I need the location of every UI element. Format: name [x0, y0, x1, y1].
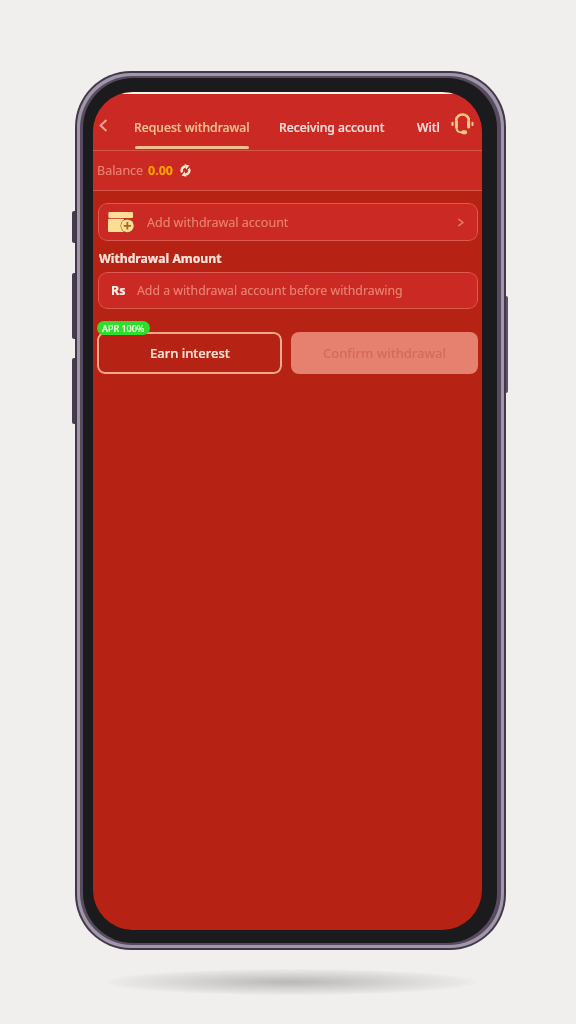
button[interactable]: Withdrawal record	[417, 94, 439, 150]
staticText: APR 100%	[102, 322, 145, 334]
button[interactable]: Add withdrawal account	[98, 203, 478, 241]
button[interactable]: Back	[93, 112, 114, 138]
staticText: Balance	[97, 162, 144, 179]
staticText: Request withdrawal	[134, 119, 250, 136]
staticText: Confirm withdrawal	[323, 344, 446, 362]
button[interactable]: Receiving account	[273, 94, 390, 150]
staticText: Receiving account	[279, 119, 385, 136]
button[interactable]: Confirm withdrawal	[291, 332, 478, 374]
button[interactable]: Refresh balance	[177, 162, 194, 179]
staticText: Add withdrawal account	[147, 214, 289, 231]
button[interactable]: Customer service	[450, 110, 475, 135]
staticText: Add a withdrawal account before withdraw…	[137, 282, 403, 299]
staticText: Earn interest	[150, 344, 230, 362]
staticText: Withdrawal Amount	[99, 250, 222, 267]
button[interactable]: Request withdrawal	[131, 94, 252, 150]
staticText: Rs	[111, 282, 126, 299]
button[interactable]: Rs	[98, 272, 478, 309]
staticText: Withdrawal record	[417, 119, 439, 136]
button[interactable]: Earn interest	[97, 332, 282, 374]
staticText: 0.00	[148, 162, 173, 179]
